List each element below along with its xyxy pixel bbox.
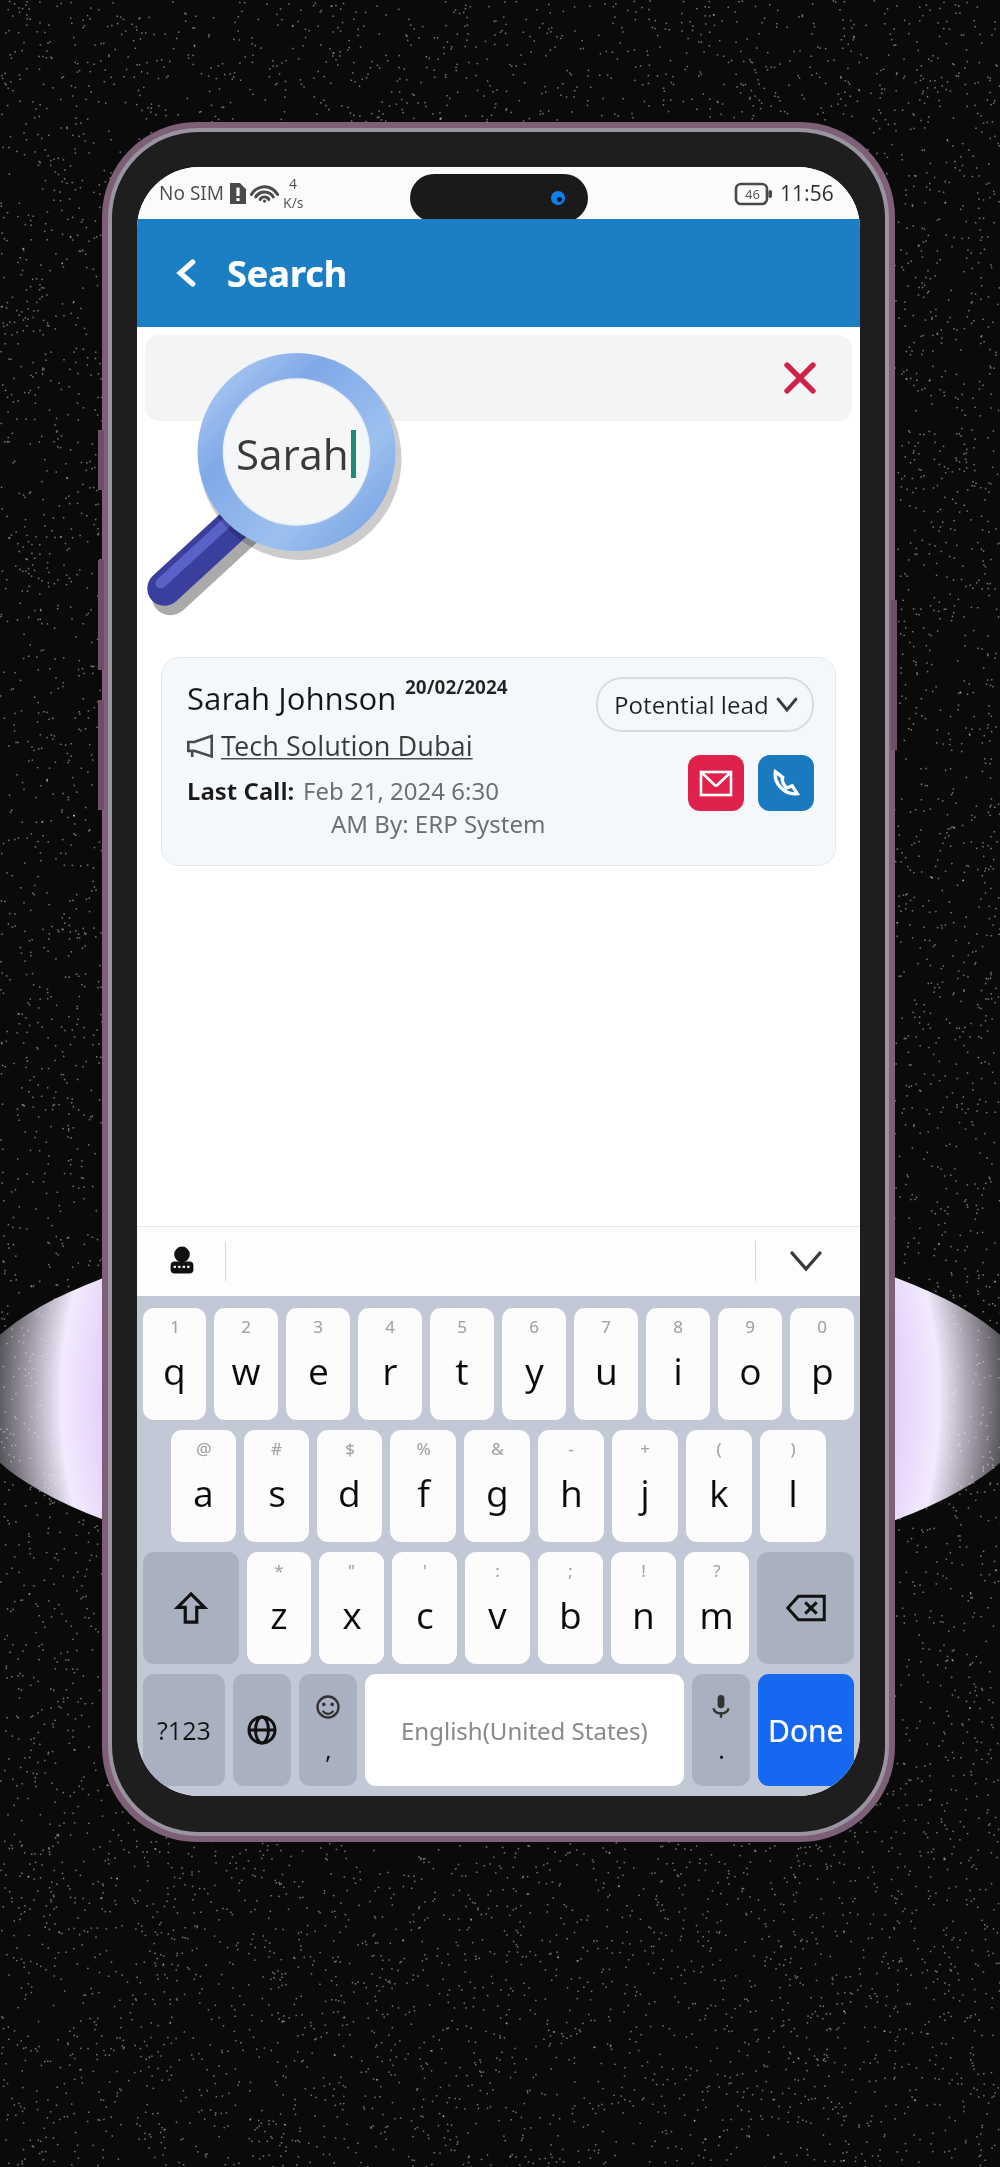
staticText: 8 [673, 1315, 683, 1338]
button[interactable]: & [464, 1430, 530, 1542]
button[interactable]: . [692, 1674, 750, 1786]
button[interactable]: , [299, 1674, 357, 1786]
staticText: 6 [529, 1315, 539, 1338]
button[interactable]: " [319, 1552, 384, 1664]
button[interactable]: ; [538, 1552, 603, 1664]
staticText: English(United States) [401, 1714, 648, 1747]
staticText: ?123 [157, 1713, 211, 1747]
staticText: ' [423, 1559, 427, 1582]
staticText: v [488, 1589, 507, 1639]
staticText: * [274, 1559, 284, 1582]
button[interactable]: % [390, 1430, 456, 1542]
staticText: @ [196, 1437, 212, 1460]
button[interactable]: Tech Solution Dubai [187, 727, 473, 764]
staticText: AM By: ERP System [331, 807, 546, 840]
staticText: Sarah Johnson [187, 677, 397, 719]
staticText: w [231, 1345, 261, 1395]
staticText: u [595, 1345, 618, 1395]
staticText: d [338, 1467, 361, 1517]
staticText: o [739, 1345, 762, 1395]
staticText: x [342, 1589, 362, 1639]
staticText: ( [716, 1437, 722, 1460]
staticText: No SIM [159, 180, 224, 206]
button[interactable]: 3 [286, 1308, 350, 1420]
staticText: m [699, 1589, 734, 1639]
button[interactable]: ) [760, 1430, 826, 1542]
staticText: p [811, 1345, 834, 1395]
staticText: 0 [817, 1315, 827, 1338]
staticText: c [416, 1589, 434, 1639]
button[interactable]: + [612, 1430, 678, 1542]
button[interactable]: : [465, 1552, 530, 1664]
staticText: j [640, 1467, 650, 1517]
staticText: 1 [170, 1315, 180, 1338]
staticText: " [348, 1559, 355, 1582]
button[interactable]: ! [611, 1552, 676, 1664]
staticText: h [560, 1467, 583, 1517]
staticText: + [640, 1437, 650, 1460]
staticText: ) [790, 1437, 796, 1460]
button[interactable]: # [244, 1430, 309, 1542]
button[interactable]: Potential lead [596, 677, 814, 732]
button[interactable]: 7 [574, 1308, 638, 1420]
button[interactable]: * [247, 1552, 311, 1664]
button[interactable]: Switch keyboard [159, 1238, 205, 1284]
staticText: 4 [289, 174, 298, 193]
staticText: 20/02/2024 [405, 674, 508, 700]
staticText: Feb 21, 2024 6:30 [303, 774, 499, 807]
staticText: 2 [241, 1315, 251, 1338]
staticText: 3 [313, 1315, 323, 1338]
button[interactable]: English(United States) [365, 1674, 684, 1786]
staticText: % [416, 1437, 431, 1460]
button[interactable] [143, 1552, 239, 1664]
button[interactable]: 6 [502, 1308, 566, 1420]
button[interactable]: - [538, 1430, 604, 1542]
staticText: K/s [283, 193, 304, 212]
button[interactable]: ( [686, 1430, 752, 1542]
staticText: # [271, 1437, 282, 1460]
button[interactable]: Call [758, 755, 814, 811]
button[interactable]: ? [684, 1552, 749, 1664]
staticText: Done [768, 1710, 844, 1751]
staticText: Search [227, 249, 348, 298]
button[interactable]: Email [688, 755, 744, 811]
staticText: 4 [385, 1315, 395, 1338]
staticText: & [491, 1437, 504, 1460]
button[interactable]: Sarah Johnson [161, 657, 836, 866]
staticText: Potential lead [614, 688, 769, 721]
button[interactable]: 9 [718, 1308, 782, 1420]
staticText: y [525, 1345, 544, 1395]
button[interactable]: 4 [358, 1308, 422, 1420]
staticText: : [495, 1559, 500, 1582]
button[interactable]: Back [159, 245, 215, 301]
button[interactable]: ?123 [143, 1674, 225, 1786]
button[interactable]: 2 [214, 1308, 278, 1420]
button[interactable]: Done [758, 1674, 854, 1786]
staticText: Last Call: [187, 774, 295, 807]
staticText: e [308, 1345, 329, 1395]
staticText: $ [345, 1437, 355, 1460]
staticText: i [673, 1345, 683, 1395]
staticText: z [270, 1589, 288, 1639]
staticText: 9 [745, 1315, 755, 1338]
staticText: q [163, 1345, 186, 1395]
button[interactable]: Clear [774, 352, 826, 404]
staticText: Tech Solution Dubai [221, 727, 473, 764]
staticText: ! [641, 1559, 646, 1582]
button[interactable]: Hide keyboard [782, 1237, 830, 1285]
staticText: g [486, 1467, 509, 1517]
staticText: . [718, 1731, 725, 1766]
button[interactable] [233, 1674, 291, 1786]
button[interactable]: 8 [646, 1308, 710, 1420]
button[interactable]: @ [171, 1430, 236, 1542]
staticText: Sarah [236, 425, 349, 482]
button[interactable] [757, 1552, 854, 1664]
button[interactable]: 1 [143, 1308, 206, 1420]
button[interactable]: ' [392, 1552, 457, 1664]
button[interactable]: 5 [430, 1308, 494, 1420]
staticText: a [193, 1467, 214, 1517]
staticText: ? [713, 1559, 721, 1582]
button[interactable]: 0 [790, 1308, 854, 1420]
button[interactable]: $ [317, 1430, 382, 1542]
button[interactable]: Clear [145, 335, 852, 421]
